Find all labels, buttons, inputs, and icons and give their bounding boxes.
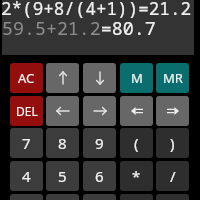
staticText: 2*(9+8/(4+1))=21.2 (1, 0, 192, 20)
staticText: DEL (16, 103, 38, 119)
button[interactable]: 3 (83, 194, 116, 200)
button[interactable]: MR (156, 63, 189, 93)
staticText: 6 (95, 166, 104, 186)
button[interactable]: 8 (46, 128, 79, 158)
button[interactable]: AC (10, 63, 43, 93)
staticText: / (170, 166, 176, 186)
button[interactable]: 5 (46, 161, 79, 191)
button[interactable]: M (120, 63, 153, 93)
button[interactable]: 4 (10, 161, 43, 191)
button[interactable] (46, 96, 79, 126)
staticText: AC (18, 69, 35, 87)
staticText: 8 (58, 133, 67, 153)
staticText: 5 (58, 166, 67, 186)
button[interactable] (120, 96, 153, 126)
staticText: MR (163, 69, 183, 87)
button[interactable]: ( (120, 128, 153, 158)
button[interactable] (83, 96, 116, 126)
button[interactable]: ) (156, 128, 189, 158)
staticText: ( (134, 133, 139, 153)
staticText: 4 (22, 166, 31, 186)
button[interactable] (156, 96, 189, 126)
button[interactable]: 6 (83, 161, 116, 191)
button[interactable] (83, 63, 116, 93)
button[interactable] (46, 63, 79, 93)
button[interactable]: + (120, 194, 153, 200)
button[interactable]: 2 (46, 194, 79, 200)
button[interactable]: / (156, 161, 189, 191)
button[interactable]: 9 (83, 128, 116, 158)
staticText: 7 (22, 133, 31, 153)
staticText: * (132, 166, 141, 186)
staticText: M (131, 69, 143, 87)
button[interactable]: * (120, 161, 153, 191)
button[interactable]: DEL (10, 96, 43, 126)
staticText: 9 (95, 133, 104, 153)
button[interactable]: - (156, 194, 189, 200)
button[interactable]: 7 (10, 128, 43, 158)
staticText: 59.5+21.2=80.7 (2, 15, 156, 40)
staticText: ) (170, 133, 175, 153)
button[interactable]: 1 (10, 194, 43, 200)
